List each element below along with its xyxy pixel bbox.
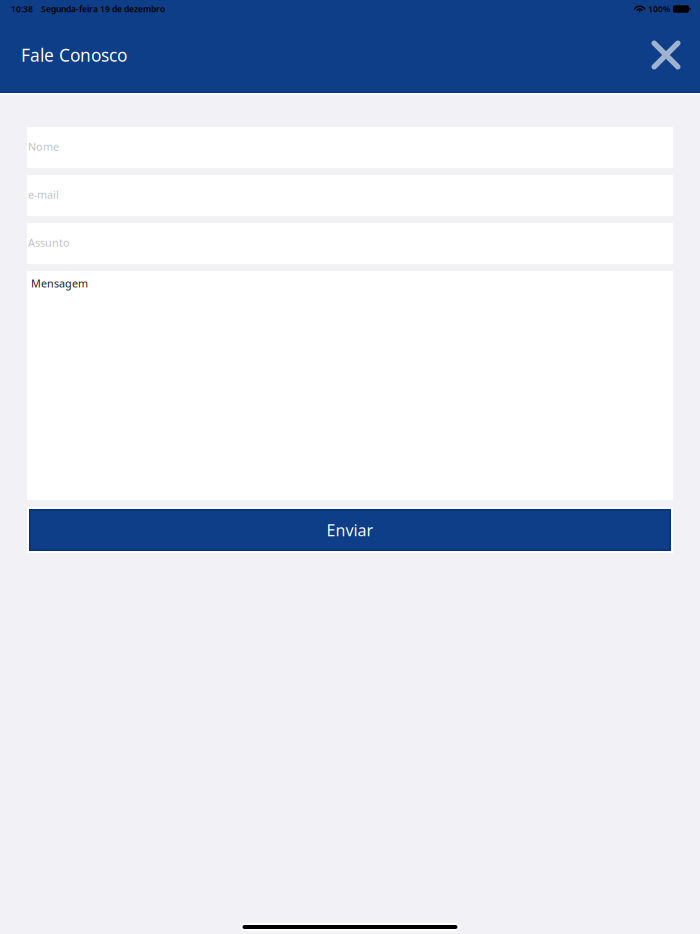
staticText: e-mail [28,187,59,202]
staticText: Fale Conosco [21,43,127,67]
button[interactable]: Enviar [27,507,673,553]
button[interactable]: Fechar [641,30,691,80]
staticText: Segunda-feira 19 de dezembro [41,3,165,15]
staticText: Mensagem [31,276,88,291]
button[interactable]: Mensagem [27,271,673,500]
staticText: 10:38 [11,3,33,15]
button[interactable]: Assunto [27,223,673,264]
staticText: Assunto [28,235,70,250]
staticText: 100% [648,3,670,15]
staticText: Enviar [326,519,373,541]
staticText: Nome [28,139,59,154]
